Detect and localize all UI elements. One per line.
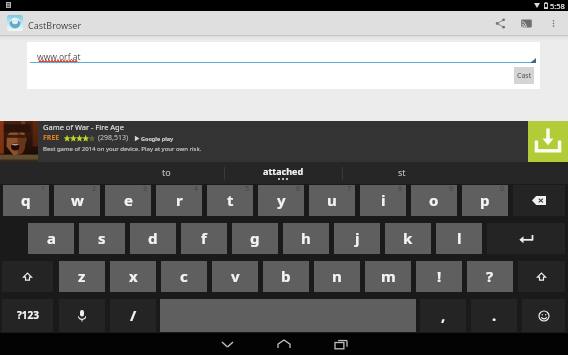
staticText: 5 <box>245 184 250 194</box>
button[interactable]: p <box>462 185 508 216</box>
staticText: f <box>201 228 207 248</box>
staticText: j <box>355 228 360 248</box>
button[interactable]: Shift <box>518 261 565 292</box>
staticText: h <box>301 228 311 248</box>
button[interactable]: s <box>79 223 125 254</box>
staticText: / <box>130 305 137 325</box>
staticText: n <box>332 266 342 286</box>
staticText: 4 <box>194 184 199 194</box>
staticText: . <box>492 305 497 325</box>
staticText: 6 <box>296 184 301 194</box>
staticText: Cast <box>517 71 532 81</box>
staticText: t <box>227 190 234 210</box>
staticText: c <box>180 266 188 286</box>
button[interactable]: g <box>232 223 278 254</box>
button[interactable]: x <box>110 261 156 292</box>
button[interactable]: f <box>181 223 227 254</box>
staticText: , <box>441 305 446 325</box>
button[interactable]: Cast <box>516 13 537 34</box>
staticText: ! <box>437 266 442 286</box>
staticText: st <box>398 166 406 178</box>
button[interactable]: Emoji <box>522 299 565 332</box>
staticText: 7 <box>347 184 352 194</box>
button[interactable]: t <box>207 185 253 216</box>
button[interactable]: q <box>3 185 49 216</box>
button[interactable]: ? <box>467 261 513 292</box>
staticText: attached <box>263 165 304 177</box>
button[interactable]: h <box>283 223 329 254</box>
button[interactable]: o <box>411 185 457 216</box>
button[interactable]: st <box>343 162 460 184</box>
staticText: CastBrowser <box>28 19 82 31</box>
staticText: FREE <box>43 133 60 143</box>
staticText: d <box>148 228 158 248</box>
button[interactable]: / <box>110 299 156 332</box>
button[interactable]: e <box>105 185 151 216</box>
button[interactable]: u <box>309 185 355 216</box>
button[interactable]: a <box>28 223 74 254</box>
button[interactable]: Back <box>207 334 247 354</box>
staticText: ?123 <box>17 308 39 322</box>
staticText: Google play <box>141 135 174 142</box>
staticText: l <box>457 228 462 248</box>
staticText: m <box>381 266 396 286</box>
button[interactable]: z <box>59 261 105 292</box>
button[interactable]: r <box>156 185 202 216</box>
staticText: v <box>231 266 240 286</box>
staticText: k <box>403 228 413 248</box>
button[interactable]: . <box>471 299 517 332</box>
button[interactable]: n <box>314 261 360 292</box>
staticText: y <box>277 190 286 210</box>
button[interactable]: ?123 <box>2 299 53 332</box>
staticText: 5:58 <box>550 1 565 11</box>
button[interactable]: Install <box>528 121 568 162</box>
button[interactable]: Backspace <box>513 185 565 216</box>
button[interactable]: ! <box>416 261 462 292</box>
button[interactable]: to <box>108 162 224 184</box>
button[interactable]: m <box>365 261 411 292</box>
button[interactable]: Home <box>264 334 304 354</box>
button[interactable]: i <box>360 185 406 216</box>
button[interactable]: Shift <box>2 261 53 292</box>
button[interactable]: attached <box>225 162 342 184</box>
staticText: 9 <box>449 184 454 194</box>
button[interactable]: More options <box>543 13 564 34</box>
staticText: b <box>281 266 291 286</box>
staticText: 1 <box>41 184 46 194</box>
button[interactable]: Recents <box>321 334 361 354</box>
button[interactable]: b <box>263 261 309 292</box>
button[interactable]: v <box>212 261 258 292</box>
staticText: 0 <box>500 184 505 194</box>
button[interactable]: j <box>334 223 380 254</box>
staticText: ? <box>486 266 494 286</box>
button[interactable]: l <box>436 223 482 254</box>
staticText: (298,513) <box>98 133 129 143</box>
staticText: Best game of 2014 on your device. Play a… <box>43 145 202 153</box>
staticText: a <box>47 228 56 248</box>
button[interactable]: , <box>420 299 466 332</box>
staticText: www.orf.at <box>37 51 81 63</box>
staticText: z <box>78 266 86 286</box>
button[interactable]: y <box>258 185 304 216</box>
button[interactable]: d <box>130 223 176 254</box>
button[interactable]: c <box>161 261 207 292</box>
staticText: u <box>327 190 337 210</box>
staticText: i <box>381 190 386 210</box>
button[interactable]: Share <box>490 13 511 34</box>
staticText: p <box>480 190 490 210</box>
staticText: 8 <box>398 184 403 194</box>
staticText: o <box>429 190 439 210</box>
button[interactable]: k <box>385 223 431 254</box>
staticText: 2 <box>92 184 97 194</box>
button[interactable]: Voice input <box>59 299 105 332</box>
staticText: q <box>21 190 31 210</box>
button[interactable]: w <box>54 185 100 216</box>
staticText: Game of War - Fire Age <box>43 122 124 132</box>
staticText: w <box>71 190 84 210</box>
staticText: x <box>129 266 138 286</box>
button[interactable]: Enter <box>487 223 565 254</box>
staticText: to <box>162 166 171 178</box>
staticText: g <box>250 228 260 248</box>
button[interactable]: Cast <box>514 67 534 84</box>
